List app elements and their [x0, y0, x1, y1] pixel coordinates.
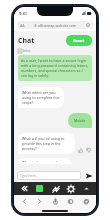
button[interactable]: Settings: [65, 183, 76, 194]
button[interactable]: Tabs: [81, 196, 92, 207]
button[interactable]: Back: [19, 196, 30, 207]
staticText: Type here...: [20, 173, 39, 178]
staticText: What is the expected output: [22, 160, 67, 162]
staticText: What will you be using to provide this s…: [22, 136, 71, 151]
staticText: As a user, I want to have a secure login…: [21, 58, 89, 78]
button[interactable]: Effects: [50, 183, 61, 194]
button[interactable]: Expand: [81, 183, 92, 194]
button[interactable]: Forward: [34, 196, 45, 207]
button[interactable]: Share: [50, 196, 61, 207]
staticText: Mobile: [74, 118, 86, 123]
staticText: Chat: [18, 36, 35, 46]
staticText: What intent are you using to complete th…: [22, 90, 60, 105]
button[interactable]: Type here...: [17, 171, 81, 180]
staticText: officemap.website.com: [38, 23, 77, 28]
button[interactable]: Send: [84, 171, 93, 180]
button[interactable]: Like: [77, 147, 84, 154]
button[interactable]: AA: [17, 21, 93, 29]
button[interactable]: Reset: [66, 35, 92, 46]
button[interactable]: Previous: [19, 183, 30, 194]
staticText: AA: [20, 23, 25, 28]
button[interactable]: Dislike: [85, 147, 92, 154]
button[interactable]: Stop: [34, 183, 45, 194]
button[interactable]: Bookmarks: [65, 196, 76, 207]
staticText: Intro: [23, 49, 31, 53]
staticText: Reset: [73, 38, 85, 43]
staticText: 9:41: [19, 11, 27, 16]
